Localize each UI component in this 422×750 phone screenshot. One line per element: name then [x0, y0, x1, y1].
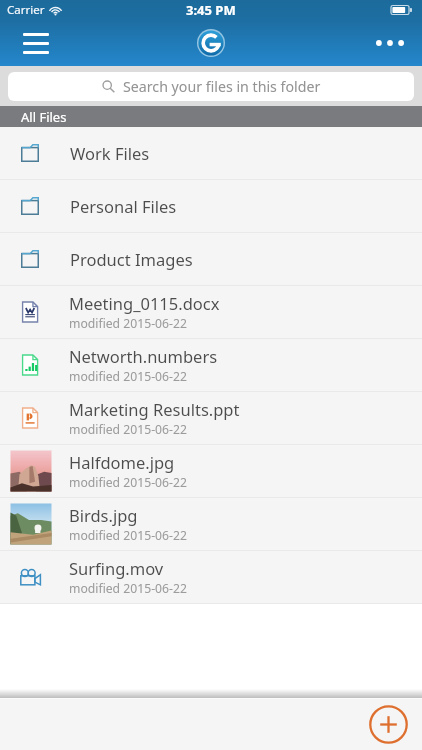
staticText: Surfing.mov — [69, 557, 164, 579]
button[interactable]: Add — [366, 702, 410, 746]
staticText: modified 2015-06-22 — [69, 474, 187, 491]
staticText: modified 2015-06-22 — [69, 580, 187, 597]
staticText: modified 2015-06-22 — [69, 368, 187, 385]
button[interactable]: Halfdome.jpg — [0, 445, 422, 498]
button[interactable]: Birds.jpg — [0, 498, 422, 551]
staticText: Birds.jpg — [69, 504, 138, 526]
button[interactable]: Product Images — [0, 233, 422, 286]
button[interactable]: App logo — [197, 29, 225, 57]
staticText: modified 2015-06-22 — [69, 527, 187, 544]
button[interactable]: Work Files — [0, 127, 422, 180]
button[interactable]: Personal Files — [0, 180, 422, 233]
staticText: Personal Files — [70, 195, 177, 217]
staticText: Marketing Results.ppt — [69, 398, 240, 420]
staticText: Search your files in this folder — [123, 77, 321, 96]
staticText: Product Images — [70, 248, 193, 270]
button[interactable]: Menu — [14, 21, 58, 65]
staticText: 3:45 PM — [186, 1, 236, 19]
button[interactable]: Meeting_0115.docx — [0, 286, 422, 339]
staticText: All Files — [21, 108, 67, 126]
staticText: Networth.numbers — [69, 345, 218, 367]
staticText: Work Files — [70, 142, 150, 164]
staticText: Carrier — [7, 2, 45, 18]
staticText: modified 2015-06-22 — [69, 421, 187, 438]
button[interactable]: Networth.numbers — [0, 339, 422, 392]
staticText: Halfdome.jpg — [69, 451, 175, 473]
button[interactable]: Marketing Results.ppt — [0, 392, 422, 445]
button[interactable]: Surfing.mov — [0, 551, 422, 604]
button[interactable]: More options — [368, 21, 412, 65]
staticText: Meeting_0115.docx — [69, 292, 220, 314]
staticText: modified 2015-06-22 — [69, 315, 187, 332]
button[interactable]: Search your files in this folder — [8, 72, 414, 101]
